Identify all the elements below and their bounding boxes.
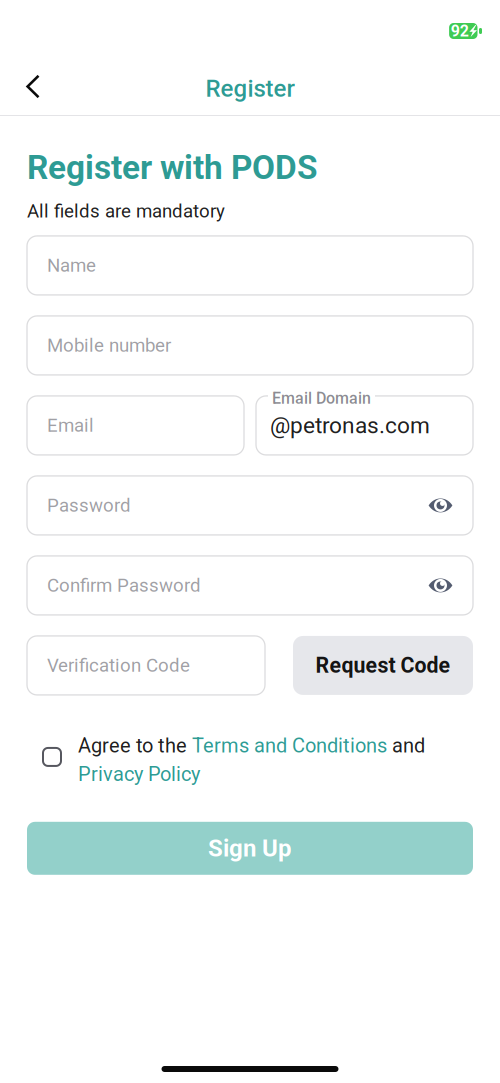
staticText: and	[387, 734, 425, 757]
staticText: Terms and Conditions	[192, 734, 387, 757]
staticText: Mobile number	[47, 334, 171, 356]
staticText: Name	[47, 254, 96, 276]
staticText: @petronas.com	[270, 412, 430, 439]
staticText: Register	[205, 74, 294, 102]
button[interactable]: Request Code	[293, 636, 473, 695]
button[interactable]: Privacy Policy	[78, 762, 200, 786]
button[interactable]: Back	[0, 50, 57, 112]
button[interactable]: Terms and Conditions	[192, 734, 387, 757]
button[interactable]: Sign Up	[27, 822, 473, 875]
staticText: All fields are mandatory	[27, 200, 225, 222]
staticText: 92	[451, 22, 469, 40]
staticText: Verification Code	[47, 654, 190, 676]
staticText: Register with PODS	[27, 148, 318, 187]
staticText: Confirm Password	[47, 574, 201, 596]
staticText: Email Domain	[272, 389, 371, 408]
staticText: Email	[47, 414, 94, 436]
staticText: Agree to the	[78, 734, 192, 757]
staticText: Sign Up	[208, 834, 292, 862]
staticText: Privacy Policy	[78, 762, 200, 786]
staticText: Request Code	[315, 653, 450, 678]
staticText: Password	[47, 494, 131, 516]
button[interactable]: Agree to the Terms and Conditions and Pr…	[27, 734, 61, 766]
